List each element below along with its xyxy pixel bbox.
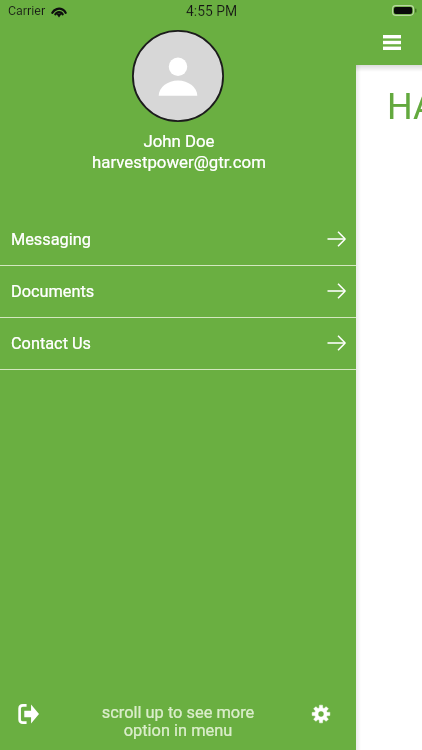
button[interactable]: Documents — [0, 266, 356, 318]
button[interactable]: Settings — [299, 694, 343, 734]
staticText: HA — [387, 86, 422, 128]
staticText: John Doe — [1, 131, 357, 151]
staticText: 4:55 PM — [186, 3, 238, 19]
staticText: Messaging — [11, 230, 91, 249]
staticText: scroll up to see more option in menu — [44, 703, 312, 740]
staticText: Documents — [11, 282, 95, 301]
staticText: Carrier — [8, 3, 46, 18]
staticText: harvestpower@gtr.com — [1, 152, 357, 172]
button[interactable]: Messaging — [0, 214, 356, 266]
button[interactable]: Log out — [5, 694, 49, 734]
button[interactable]: Contact Us — [0, 318, 356, 370]
button[interactable]: Menu — [375, 25, 409, 59]
staticText: Contact Us — [11, 334, 91, 353]
